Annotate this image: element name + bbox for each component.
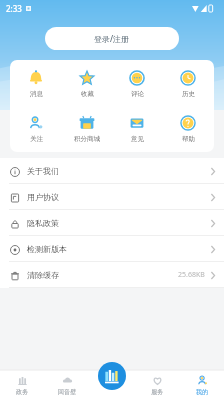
staticText: 隐私政策 — [27, 218, 59, 228]
staticText: 服务 — [151, 388, 163, 396]
staticText: 消息 — [30, 90, 43, 98]
staticText: 25.68KB — [178, 270, 205, 280]
button[interactable]: 消息 — [12, 69, 60, 98]
button[interactable]: 用户协议 — [0, 184, 224, 210]
staticText: 积分商城 — [74, 135, 100, 143]
staticText: 政务 — [16, 388, 28, 396]
staticText: 检测新版本 — [27, 244, 67, 254]
staticText: 意见 — [131, 135, 144, 143]
staticText: 收藏 — [81, 90, 94, 98]
staticText: 我的 — [196, 388, 208, 396]
button[interactable]: 检测新版本 — [0, 236, 224, 262]
button[interactable]: 积分商城 — [63, 114, 111, 143]
staticText: 2:33 — [6, 3, 22, 14]
staticText: 用户协议 — [27, 192, 59, 202]
button[interactable]: 我的 — [179, 370, 224, 400]
button[interactable]: 服务 — [134, 370, 179, 400]
button[interactable]: 意见 — [113, 114, 161, 143]
button[interactable]: 历史 — [164, 69, 212, 98]
button[interactable]: 帮助 — [164, 114, 212, 143]
staticText: 清除缓存 — [27, 270, 59, 280]
button[interactable]: 关于我们 — [0, 158, 224, 184]
staticText: 回音壁 — [58, 388, 76, 396]
button[interactable]: 首页 — [98, 362, 126, 390]
button[interactable]: 隐私政策 — [0, 210, 224, 236]
button[interactable]: 关注 — [12, 114, 60, 143]
button[interactable]: 登录/注册 — [45, 27, 179, 50]
staticText: 历史 — [182, 90, 195, 98]
staticText: 关于我们 — [27, 166, 59, 176]
button[interactable]: 收藏 — [63, 69, 111, 98]
button[interactable]: 回音壁 — [44, 370, 89, 400]
staticText: 登录/注册 — [94, 33, 130, 44]
button[interactable]: 政务 — [0, 370, 44, 400]
staticText: 关注 — [30, 135, 43, 143]
staticText: 帮助 — [182, 135, 195, 143]
button[interactable]: 评论 — [113, 69, 161, 98]
staticText: 评论 — [131, 90, 144, 98]
button[interactable]: 清除缓存 — [0, 262, 224, 288]
